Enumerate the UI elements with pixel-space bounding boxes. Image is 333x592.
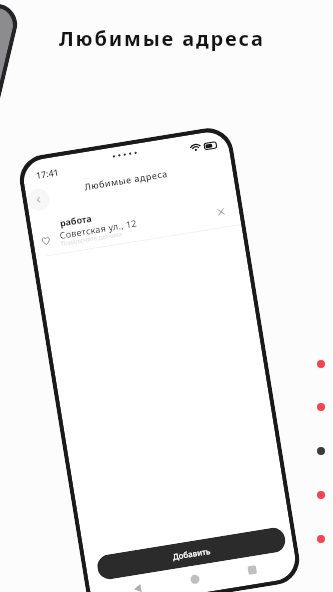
staticText: Советская ул., 12 — [59, 217, 138, 241]
button[interactable]: Remove — [213, 204, 228, 219]
button[interactable]: Page 3 — [317, 447, 325, 455]
button[interactable]: Добавить — [96, 526, 287, 581]
button[interactable]: Back — [26, 187, 51, 212]
staticText: Подключите датчики — [60, 230, 123, 248]
staticText: Добавить — [172, 545, 212, 562]
staticText: Любимые адреса — [59, 25, 265, 52]
staticText: работа — [59, 212, 93, 229]
button[interactable]: Page 2 — [317, 403, 325, 411]
button[interactable]: Page 1 — [317, 360, 325, 368]
button[interactable]: Page 4 — [317, 491, 325, 499]
staticText: Любимые адреса — [83, 167, 169, 192]
staticText: 17:41 — [35, 165, 60, 181]
button[interactable]: Page 5 — [317, 535, 325, 543]
